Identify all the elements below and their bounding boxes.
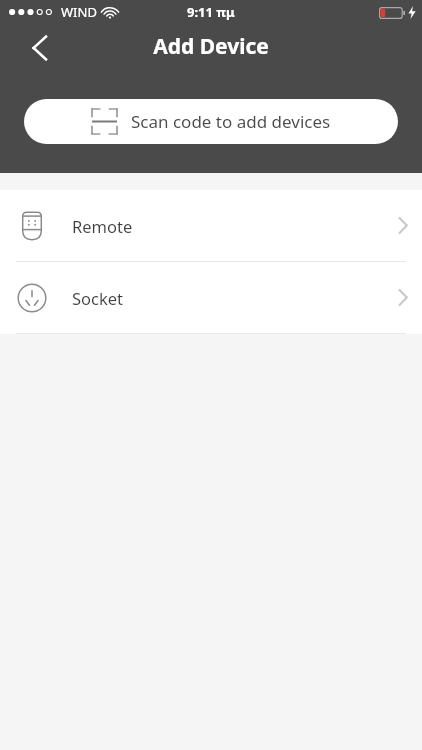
button[interactable]: Back (14, 28, 66, 68)
staticText: Remote (72, 215, 133, 237)
staticText: Add Device (153, 32, 269, 61)
staticText: Socket (72, 287, 124, 309)
staticText: WIND (61, 3, 97, 21)
button[interactable]: Remote (0, 190, 422, 261)
staticText: 9:11 πμ (187, 3, 235, 21)
staticText: Scan code to add devices (131, 110, 331, 133)
button[interactable]: Socket (0, 262, 422, 333)
button[interactable]: Scan code to add devices (24, 99, 398, 144)
